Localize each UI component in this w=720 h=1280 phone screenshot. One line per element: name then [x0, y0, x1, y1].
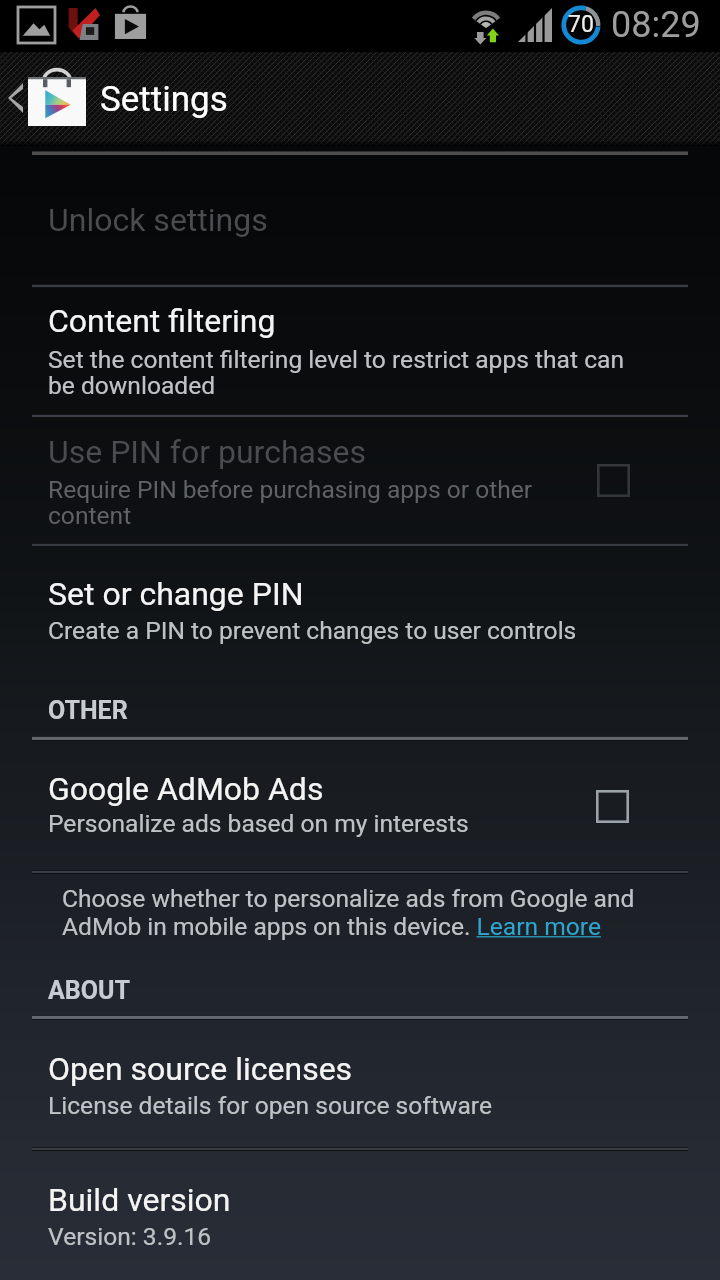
button[interactable] [0, 740, 720, 871]
staticText: 70 [568, 11, 594, 38]
staticText: OTHER [48, 696, 128, 725]
button[interactable]: Toggle checkbox [571, 438, 655, 522]
staticText: Unlock settings [48, 201, 268, 239]
staticText: Google AdMob Ads [48, 770, 324, 808]
staticText: License details for open source software [48, 1091, 492, 1120]
button[interactable]: Navigate up [0, 52, 28, 146]
button[interactable] [0, 1150, 720, 1280]
button[interactable]: Toggle checkbox [570, 764, 654, 848]
staticText: Set the content filtering level to restr… [48, 345, 624, 400]
staticText: Set or change PIN [48, 575, 304, 613]
staticText: Content filtering [48, 302, 276, 340]
staticText: Create a PIN to prevent changes to user … [48, 616, 577, 645]
staticText: Settings [100, 79, 228, 120]
staticText: ABOUT [48, 976, 130, 1005]
button[interactable]: Choose whether to personalize ads from G… [62, 884, 635, 941]
staticText: Use PIN for purchases [48, 433, 366, 471]
staticText: Version: 3.9.16 [48, 1222, 212, 1251]
button[interactable] [0, 547, 720, 736]
staticText: Build version [48, 1181, 231, 1219]
button[interactable] [0, 1020, 720, 1147]
button[interactable] [0, 288, 720, 414]
staticText: Personalize ads based on my interests [48, 809, 469, 838]
button[interactable] [0, 155, 720, 286]
staticText: 08:29 [611, 4, 701, 46]
button[interactable] [0, 418, 720, 543]
staticText: Require PIN before purchasing apps or ot… [48, 475, 533, 530]
staticText: Open source licenses [48, 1050, 353, 1088]
